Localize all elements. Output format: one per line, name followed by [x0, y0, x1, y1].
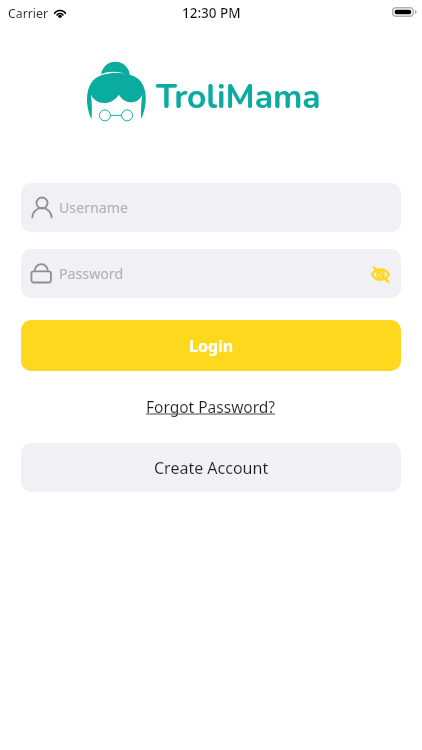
button[interactable]: Create Account — [21, 443, 401, 492]
button[interactable]: Login — [21, 320, 401, 371]
staticText: 12:30 PM — [182, 4, 241, 22]
staticText: Login — [189, 335, 234, 357]
staticText: Create Account — [154, 457, 269, 479]
staticText: Carrier — [8, 5, 49, 22]
button[interactable]: Password — [21, 249, 401, 298]
staticText: TroliMama — [156, 74, 321, 120]
staticText: Forgot Password? — [146, 396, 276, 417]
button[interactable]: Username — [21, 183, 401, 232]
button[interactable]: Show password — [368, 262, 392, 286]
staticText: Username — [59, 198, 129, 217]
staticText: Password — [59, 264, 124, 283]
button[interactable]: Forgot Password? — [138, 393, 284, 420]
